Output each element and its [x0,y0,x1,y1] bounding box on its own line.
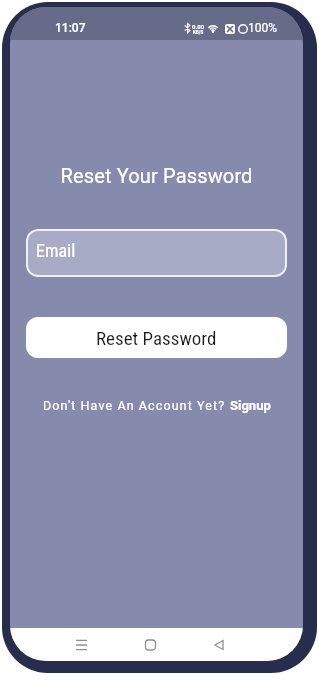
button[interactable]: Signup [230,398,271,413]
staticText: Reset Your Password [10,164,303,187]
button[interactable]: Email [26,229,287,277]
staticText: Email [36,240,76,261]
button[interactable] [62,628,102,661]
staticText: Reset Password [96,327,217,349]
staticText: 11:07 [55,21,86,35]
button[interactable]: Reset Password [26,317,287,358]
staticText: Don't Have An Account Yet? [43,398,226,413]
button[interactable] [130,628,170,661]
staticText: KB/S [193,30,204,35]
staticText: 0.00 [192,23,205,30]
staticText: 100% [248,21,278,35]
button[interactable] [200,628,240,661]
